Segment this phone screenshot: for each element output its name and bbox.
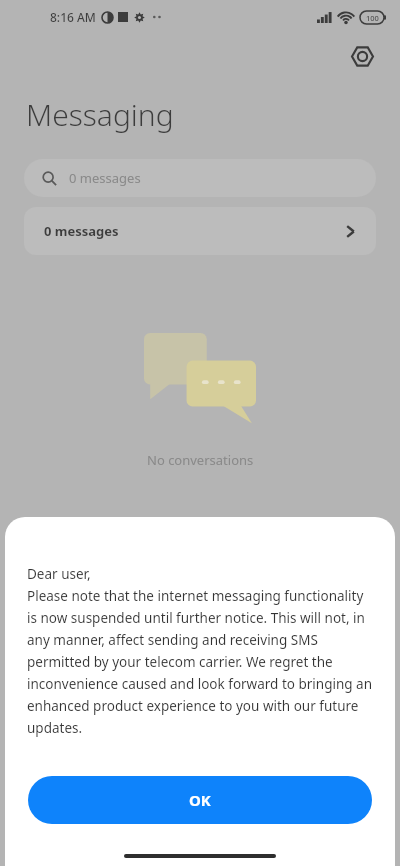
staticText: 0 messages xyxy=(69,169,141,187)
staticText: 100 xyxy=(366,13,379,23)
staticText: No conversations xyxy=(147,451,254,469)
staticText: 0 messages xyxy=(44,222,119,240)
staticText: Messaging xyxy=(26,94,174,135)
button[interactable]: 0 messages xyxy=(24,207,376,255)
staticText: Dear user, Please note that the internet… xyxy=(27,565,373,737)
staticText: OK xyxy=(189,790,211,810)
button[interactable]: 0 messages xyxy=(24,159,376,197)
button[interactable]: OK xyxy=(28,776,372,824)
staticText: 8:16 AM xyxy=(50,9,96,25)
button[interactable]: Settings xyxy=(348,42,376,70)
